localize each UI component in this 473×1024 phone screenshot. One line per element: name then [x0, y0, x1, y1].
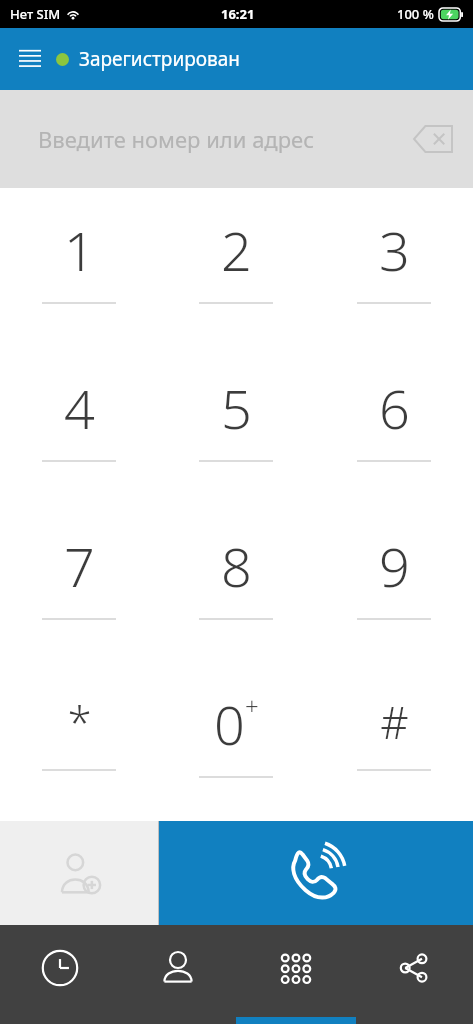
button[interactable]: Add contact: [0, 821, 158, 925]
staticText: Зарегистрирован: [79, 46, 241, 72]
button[interactable]: Contacts: [119, 925, 237, 1024]
button[interactable]: 4: [0, 347, 157, 505]
staticText: 100 %: [397, 5, 434, 23]
staticText: #: [380, 692, 409, 752]
staticText: Нет SIM: [10, 5, 61, 23]
button[interactable]: Recent: [0, 925, 119, 1024]
staticText: 8: [221, 529, 252, 603]
button[interactable]: Share: [355, 925, 473, 1024]
staticText: 1: [64, 213, 95, 287]
staticText: 5: [221, 371, 252, 445]
staticText: 6: [379, 371, 410, 445]
button[interactable]: Menu: [8, 37, 52, 81]
staticText: 7: [64, 529, 95, 603]
staticText: 3: [379, 213, 410, 287]
staticText: 9: [379, 529, 410, 603]
button[interactable]: 0: [157, 663, 315, 821]
staticText: +: [245, 689, 259, 722]
button[interactable]: Call: [159, 821, 473, 925]
staticText: 2: [221, 213, 252, 287]
button[interactable]: 7: [0, 505, 157, 663]
button[interactable]: #: [315, 663, 473, 821]
staticText: Введите номер или адрес: [38, 124, 315, 154]
button[interactable]: 3: [315, 188, 473, 347]
staticText: 4: [64, 371, 95, 445]
button[interactable]: Backspace: [407, 113, 459, 165]
button[interactable]: *: [0, 663, 157, 821]
button[interactable]: 8: [157, 505, 315, 663]
button[interactable]: Keypad: [237, 925, 355, 1024]
button[interactable]: 5: [157, 347, 315, 505]
button[interactable]: 2: [157, 188, 315, 347]
button[interactable]: 6: [315, 347, 473, 505]
staticText: 16:21: [221, 5, 255, 23]
staticText: *: [67, 692, 92, 752]
button[interactable]: 1: [0, 188, 157, 347]
button[interactable]: 9: [315, 505, 473, 663]
staticText: 0: [214, 687, 245, 761]
